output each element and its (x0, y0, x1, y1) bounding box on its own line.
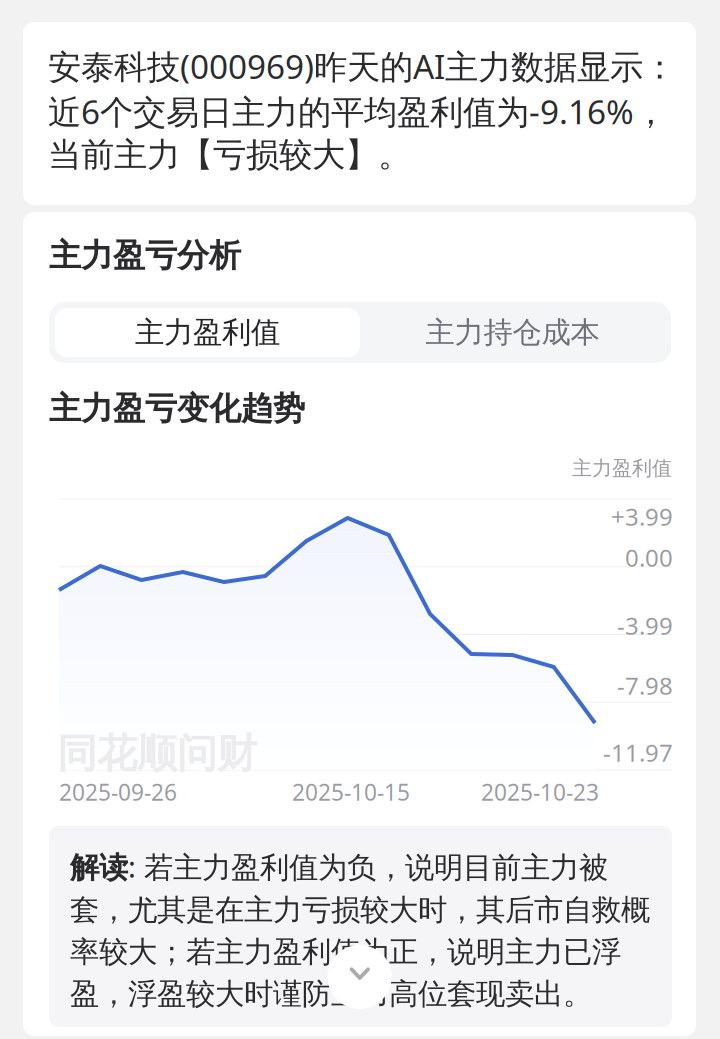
staticText: -11.97 (603, 736, 673, 768)
staticText: 0.00 (625, 541, 673, 573)
button[interactable]: 主力盈利值 (55, 308, 360, 357)
staticText: 主力盈亏分析 (49, 236, 241, 275)
staticText: 解读: 若主力盈利值为负，说明目前主力被 (70, 847, 608, 886)
staticText: 套，尤其是在主力亏损较大时，其后市自救概 (70, 892, 650, 928)
staticText: 同花顺问财 (57, 729, 257, 778)
staticText: 主力盈利值 (135, 314, 280, 350)
staticText: 2025-10-15 (292, 777, 410, 807)
staticText: 安泰科技(000969)昨天的AI主力数据显示： (48, 44, 676, 88)
staticText: 近6个交易日主力的平均盈利值为-9.16%， (48, 89, 667, 134)
staticText: 盈，浮盈较大时谨防主力高位套现卖出。 (70, 976, 592, 1012)
button[interactable]: 主力持仓成本 (360, 308, 665, 357)
staticText: 主力持仓成本 (425, 314, 599, 350)
staticText: 当前主力【亏损较大】。 (48, 134, 411, 175)
button[interactable]: Expand (328, 945, 392, 1009)
staticText: 2025-09-26 (59, 777, 177, 807)
staticText: -3.99 (617, 609, 673, 641)
staticText: 率较大；若主力盈利值为正，说明主力已浮 (70, 934, 621, 970)
staticText: -7.98 (617, 669, 673, 701)
staticText: +3.99 (611, 500, 673, 532)
staticText: 2025-10-23 (481, 777, 599, 807)
staticText: 主力盈利值 (572, 456, 672, 481)
staticText: 主力盈亏变化趋势 (49, 389, 305, 428)
